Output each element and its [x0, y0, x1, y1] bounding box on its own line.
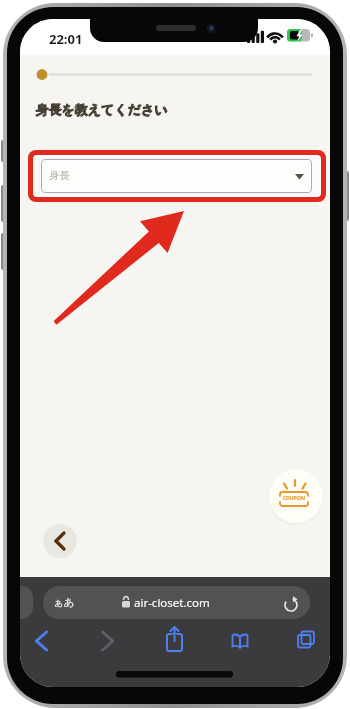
staticText: 身長 [49, 169, 70, 182]
staticText: 身長を教えてください [35, 102, 168, 118]
button[interactable]: COUPON [269, 469, 323, 523]
button[interactable] [43, 524, 77, 558]
staticText: COUPON [283, 495, 305, 502]
button[interactable]: 身長 [41, 159, 312, 193]
button[interactable]: ぁあ [43, 586, 310, 619]
staticText: ぁあ [53, 596, 75, 609]
staticText: 22:01 [49, 30, 83, 48]
staticText: 身長を教えてください [35, 101, 168, 117]
staticText: 身長を教えてください [36, 101, 169, 117]
staticText: air-closet.com [134, 595, 210, 611]
